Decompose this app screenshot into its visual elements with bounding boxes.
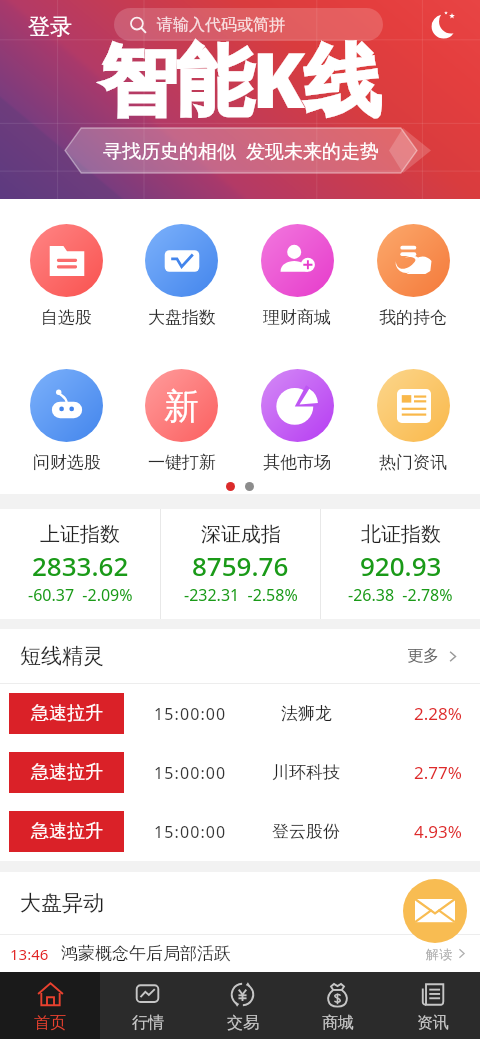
staticText: 自选股 bbox=[41, 307, 92, 328]
staticText: 深证成指 bbox=[201, 522, 281, 547]
staticText: 15:00:00 bbox=[154, 703, 227, 725]
staticText: 鸿蒙概念午后局部活跃 bbox=[61, 943, 231, 964]
button[interactable]: 交易 bbox=[195, 972, 290, 1039]
staticText: 川环科技 bbox=[272, 762, 340, 783]
button[interactable]: 问财选股 bbox=[9, 369, 124, 473]
button[interactable]: 商城 bbox=[290, 972, 385, 1039]
staticText: 行情 bbox=[132, 1013, 164, 1033]
staticText: 新 bbox=[164, 384, 199, 428]
button[interactable]: 大盘异动 bbox=[20, 872, 460, 934]
staticText: 其他市场 bbox=[263, 452, 331, 473]
staticText: 热门资讯 bbox=[379, 452, 447, 473]
button[interactable]: 登录 bbox=[28, 13, 72, 41]
button[interactable]: 资讯 bbox=[385, 972, 480, 1039]
staticText: 首页 bbox=[34, 1013, 66, 1033]
button[interactable]: 短线精灵 bbox=[20, 629, 460, 683]
staticText: 2.77% bbox=[414, 761, 462, 784]
staticText: 4.93% bbox=[414, 820, 462, 843]
button[interactable]: 自选股 bbox=[9, 224, 124, 328]
button[interactable]: 上证指数 bbox=[0, 509, 160, 619]
staticText: 寻找历史的相似 发现未来的走势 bbox=[103, 138, 379, 164]
button[interactable]: 其他市场 bbox=[239, 369, 355, 473]
button[interactable]: 急速拉升 bbox=[0, 684, 480, 743]
staticText: 大盘指数 bbox=[148, 307, 216, 328]
staticText: 我的持仓 bbox=[379, 307, 447, 328]
staticText: 请输入代码或简拼 bbox=[157, 15, 285, 35]
button[interactable]: 请输入代码或简拼 bbox=[114, 8, 383, 41]
button[interactable]: 急速拉升 bbox=[0, 802, 480, 861]
staticText: 上证指数 bbox=[40, 522, 120, 547]
button[interactable]: 行情 bbox=[100, 972, 195, 1039]
staticText: 更多 bbox=[407, 646, 439, 666]
staticText: 2.28% bbox=[414, 702, 462, 725]
staticText: -232.31 -2.58% bbox=[184, 584, 298, 606]
staticText: 理财商城 bbox=[263, 307, 331, 328]
staticText: -26.38 -2.78% bbox=[348, 584, 453, 606]
staticText: -60.37 -2.09% bbox=[28, 584, 133, 606]
staticText: 解读 bbox=[426, 946, 452, 962]
button[interactable]: 首页 bbox=[0, 972, 100, 1039]
staticText: 问财选股 bbox=[33, 452, 101, 473]
staticText: 法狮龙 bbox=[281, 703, 332, 724]
staticText: 短线精灵 bbox=[20, 643, 104, 669]
button[interactable]: 理财商城 bbox=[239, 224, 355, 328]
button[interactable]: 深证成指 bbox=[161, 509, 320, 619]
staticText: 15:00:00 bbox=[154, 821, 227, 843]
button[interactable]: 13:46 bbox=[10, 935, 468, 972]
staticText: 大盘异动 bbox=[20, 890, 104, 916]
staticText: 一键打新 bbox=[148, 452, 216, 473]
button[interactable]: 我的持仓 bbox=[355, 224, 471, 328]
staticText: 急速拉升 bbox=[31, 702, 103, 725]
button[interactable]: Messages bbox=[403, 879, 467, 943]
button[interactable]: 急速拉升 bbox=[0, 743, 480, 802]
staticText: 13:46 bbox=[10, 944, 49, 964]
staticText: 2833.62 bbox=[32, 548, 129, 583]
staticText: 15:00:00 bbox=[154, 762, 227, 784]
staticText: 商城 bbox=[322, 1013, 354, 1033]
button[interactable]: 大盘指数 bbox=[124, 224, 239, 328]
staticText: 急速拉升 bbox=[31, 761, 103, 784]
button[interactable]: 北证指数 bbox=[321, 509, 480, 619]
staticText: 登云股份 bbox=[272, 821, 340, 842]
button[interactable]: Night mode bbox=[428, 10, 458, 40]
staticText: 8759.76 bbox=[192, 548, 289, 583]
staticText: 交易 bbox=[227, 1013, 259, 1033]
staticText: 智能K线 bbox=[100, 26, 380, 131]
staticText: 北证指数 bbox=[361, 522, 441, 547]
staticText: 920.93 bbox=[360, 548, 442, 583]
button[interactable]: 热门资讯 bbox=[355, 369, 471, 473]
button[interactable]: 新 bbox=[124, 369, 239, 473]
staticText: 资讯 bbox=[417, 1013, 449, 1033]
staticText: 急速拉升 bbox=[31, 820, 103, 843]
